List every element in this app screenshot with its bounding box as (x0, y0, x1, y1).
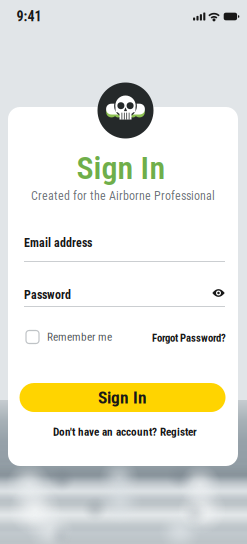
staticText: Remember me (47, 330, 112, 344)
button[interactable]: Don't have an account? Register (10, 426, 240, 438)
button[interactable]: Show password (208, 285, 228, 301)
button[interactable]: Forgot Password? (152, 330, 226, 346)
staticText: Forgot Password? (152, 332, 226, 344)
staticText: Created for the Airborne Professional (31, 189, 215, 203)
button[interactable]: Sign In (19, 383, 225, 412)
button[interactable]: Remember me (26, 329, 112, 345)
staticText: Sign In (98, 387, 147, 408)
staticText: Password (24, 288, 71, 302)
staticText: Email address (24, 236, 92, 250)
staticText: Don't have an account? Register (53, 425, 197, 438)
staticText: Sign In (76, 149, 165, 187)
staticText: 9:41 (16, 8, 41, 25)
